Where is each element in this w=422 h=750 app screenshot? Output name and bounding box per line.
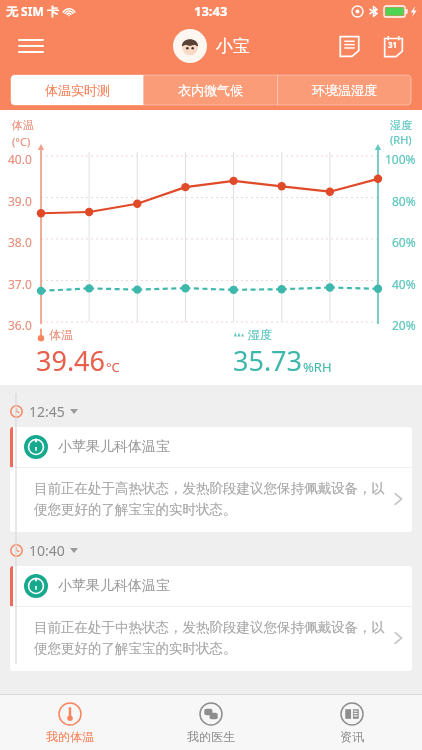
staticText: 40% <box>392 276 416 292</box>
staticText: 无 SIM 卡 <box>6 3 59 19</box>
button[interactable]: 小宝 <box>173 29 250 63</box>
staticText: 10:40 <box>29 541 65 560</box>
staticText: 39.0 <box>8 193 32 209</box>
staticText: 35.73 <box>233 342 303 379</box>
staticText: 体温 <box>49 327 73 342</box>
staticText: 我的体温 <box>46 729 94 744</box>
staticText: 小宝 <box>216 36 250 57</box>
staticText: 目前正在处于中热状态，发热阶段建议您保持佩戴设备，以便您更好的了解宝宝的实时状态… <box>34 619 393 657</box>
button[interactable]: 资讯 <box>281 695 422 750</box>
staticText: 环境温湿度 <box>312 82 377 98</box>
staticText: 体温 <box>12 118 34 132</box>
staticText: 38.0 <box>8 234 32 250</box>
staticText: 小苹果儿科体温宝 <box>58 577 170 595</box>
button[interactable]: 我的体温 <box>0 695 140 750</box>
staticText: (RH) <box>390 132 412 147</box>
staticText: 小苹果儿科体温宝 <box>58 438 170 456</box>
staticText: °C <box>106 358 120 376</box>
staticText: 39.46 <box>36 342 106 379</box>
button[interactable]: 衣内微气候 <box>144 75 277 105</box>
staticText: 目前正在处于高热状态，发热阶段建议您保持佩戴设备，以便您更好的了解宝宝的实时状态… <box>34 480 393 518</box>
button[interactable]: Calendar <box>376 29 410 63</box>
staticText: 37.0 <box>8 276 32 292</box>
staticText: 20% <box>392 317 416 333</box>
button[interactable]: 环境温湿度 <box>278 75 411 105</box>
staticText: (°C) <box>12 134 31 149</box>
staticText: 12:45 <box>29 402 65 421</box>
staticText: 衣内微气候 <box>178 82 243 98</box>
staticText: 36.0 <box>8 317 32 333</box>
staticText: %RH <box>303 358 332 376</box>
staticText: 60% <box>392 234 416 250</box>
staticText: 40.0 <box>8 151 32 167</box>
button[interactable]: 小苹果儿科体温宝 <box>10 566 412 671</box>
staticText: 100% <box>385 151 416 167</box>
staticText: 资讯 <box>340 729 364 744</box>
button[interactable]: 我的医生 <box>140 695 281 750</box>
staticText: 我的医生 <box>187 729 235 744</box>
staticText: 湿度 <box>390 118 412 132</box>
button[interactable]: Menu <box>14 29 48 63</box>
staticText: 湿度 <box>248 327 272 342</box>
button[interactable]: 体温实时测 <box>11 75 143 105</box>
staticText: 31 <box>388 39 398 50</box>
button[interactable]: Notes <box>332 29 366 63</box>
button[interactable]: 小苹果儿科体温宝 <box>10 427 412 532</box>
staticText: 80% <box>392 193 416 209</box>
staticText: 13:43 <box>194 2 228 20</box>
staticText: 体温实时测 <box>45 82 110 98</box>
